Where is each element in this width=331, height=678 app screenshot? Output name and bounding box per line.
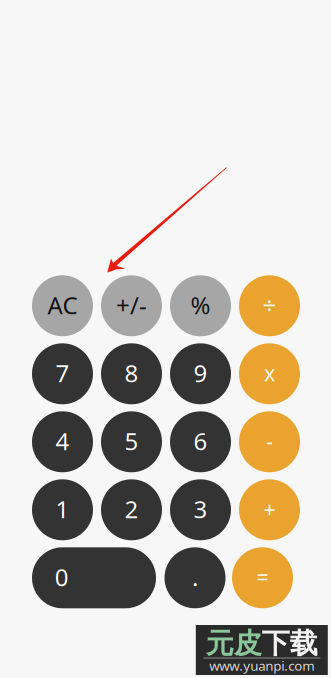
button[interactable]: 7 xyxy=(32,343,93,404)
staticText: 4 xyxy=(55,425,69,457)
staticText: 9 xyxy=(193,357,207,389)
button[interactable]: ÷ xyxy=(239,275,300,336)
button[interactable]: 1 xyxy=(32,479,93,540)
button[interactable]: . xyxy=(164,547,225,608)
staticText: . xyxy=(192,561,198,593)
staticText: 元皮 xyxy=(206,626,262,661)
staticText: 2 xyxy=(124,493,138,525)
staticText: - xyxy=(266,427,273,455)
button[interactable]: +/- xyxy=(101,275,162,336)
staticText: = xyxy=(256,563,268,591)
button[interactable]: 0 xyxy=(32,547,156,608)
staticText: 0 xyxy=(55,561,69,593)
button[interactable]: 8 xyxy=(101,343,162,404)
staticText: 下载 xyxy=(262,626,318,661)
staticText: 5 xyxy=(124,425,138,457)
button[interactable]: % xyxy=(170,275,231,336)
button[interactable]: 5 xyxy=(101,411,162,472)
button[interactable]: AC xyxy=(32,275,93,336)
staticText: +/- xyxy=(116,289,147,321)
button[interactable]: 4 xyxy=(32,411,93,472)
button[interactable]: 2 xyxy=(101,479,162,540)
button[interactable]: 9 xyxy=(170,343,231,404)
staticText: 3 xyxy=(193,493,207,525)
button[interactable]: + xyxy=(239,479,300,540)
staticText: 7 xyxy=(55,357,69,389)
staticText: 1 xyxy=(55,493,69,525)
staticText: x xyxy=(264,359,275,387)
staticText: % xyxy=(190,289,210,321)
staticText: ÷ xyxy=(262,289,276,321)
button[interactable]: - xyxy=(239,411,300,472)
button[interactable]: 6 xyxy=(170,411,231,472)
button[interactable]: = xyxy=(232,547,293,608)
staticText: + xyxy=(263,495,275,523)
staticText: 6 xyxy=(193,425,207,457)
button[interactable]: x xyxy=(239,343,300,404)
staticText: 8 xyxy=(124,357,138,389)
staticText: www.yuanpi.com xyxy=(209,657,314,674)
button[interactable]: 3 xyxy=(170,479,231,540)
staticText: AC xyxy=(47,289,77,321)
